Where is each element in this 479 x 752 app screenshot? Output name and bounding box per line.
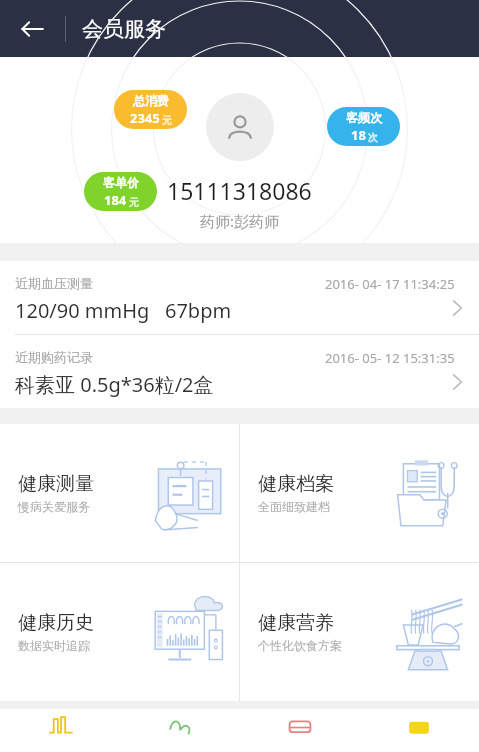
button[interactable]: 客单价 (84, 172, 157, 211)
button[interactable]: 健康测量 (0, 424, 239, 562)
staticText: 客频次 (346, 110, 382, 125)
staticText: 健康档案 (258, 472, 334, 496)
staticText: 近期购药记录 (15, 349, 93, 365)
staticText: 慢病关爱服务 (18, 499, 90, 514)
staticText: 客单价 (103, 175, 139, 190)
staticText: 元 (129, 196, 139, 209)
button[interactable]: 客频次 (327, 107, 400, 146)
staticText: 2345 (130, 109, 160, 127)
staticText: 2016- 04- 17 11:34:25 (325, 275, 455, 293)
staticText: 184 (104, 191, 127, 209)
staticText: 2016- 05- 12 15:31:35 (325, 349, 455, 367)
staticText: 健康历史 (18, 611, 94, 635)
staticText: 药师:彭药师 (200, 211, 280, 231)
staticText: 15111318086 (167, 175, 312, 206)
button[interactable]: Avatar (206, 93, 274, 161)
staticText: 元 (162, 114, 172, 127)
staticText: 近期血压测量 (15, 275, 93, 291)
staticText: 全面细致建档 (258, 499, 330, 514)
staticText: 会员服务 (82, 16, 166, 42)
button[interactable]: Orders (240, 709, 359, 752)
button[interactable]: 近期血压测量 (0, 261, 479, 335)
button[interactable]: Measure (1, 709, 120, 752)
staticText: 120/90 mmHg 67bpm (15, 297, 232, 324)
button[interactable]: 健康历史 (0, 563, 239, 701)
staticText: 健康测量 (18, 472, 94, 496)
button[interactable]: Back (8, 5, 56, 53)
button[interactable]: 健康档案 (240, 424, 479, 562)
button[interactable]: 健康营养 (240, 563, 479, 701)
staticText: 数据实时追踪 (18, 638, 90, 653)
staticText: 健康营养 (258, 611, 334, 635)
staticText: 18 (351, 126, 366, 144)
staticText: 次 (368, 131, 378, 144)
button[interactable]: 总消费 (114, 90, 187, 129)
staticText: 总消费 (133, 93, 169, 108)
button[interactable]: Health (120, 709, 239, 752)
button[interactable]: 近期购药记录 (0, 335, 479, 408)
staticText: 个性化饮食方案 (258, 638, 342, 653)
staticText: 科素亚 0.5g*36粒/2盒 (15, 371, 214, 398)
button[interactable]: Profile (359, 709, 478, 752)
